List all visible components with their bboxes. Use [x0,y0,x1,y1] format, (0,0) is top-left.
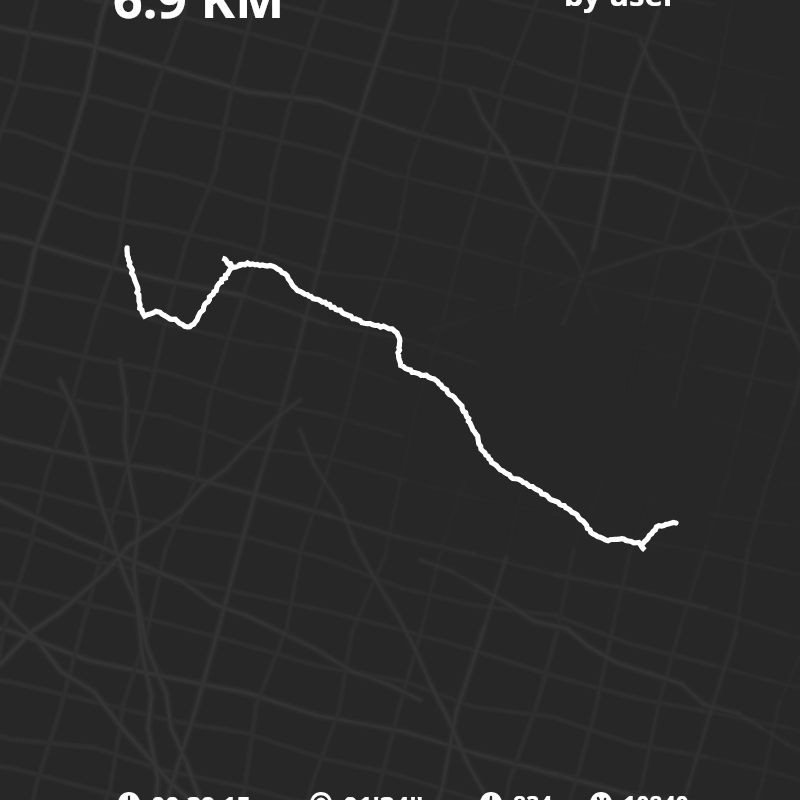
staticText: by user [564,0,677,15]
button[interactable]: Steps [590,792,689,800]
button[interactable]: Duration [118,792,251,800]
staticText: 6.9 KM [113,0,285,33]
staticText: 834 [513,788,553,800]
staticText: 01'34'' [343,788,424,800]
button[interactable]: Calories [480,792,553,800]
button[interactable]: Pace [310,792,424,800]
staticText: 00:39:15 [151,788,251,800]
staticText: 10840 [623,788,689,800]
